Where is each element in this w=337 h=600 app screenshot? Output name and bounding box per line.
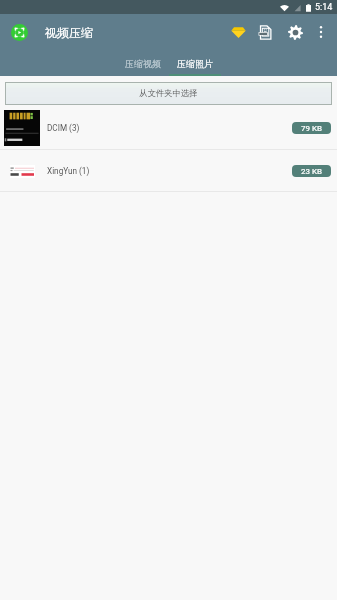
button[interactable]: 从文件夹中选择 [5, 82, 332, 105]
staticText: DCIM (3) [47, 123, 80, 133]
staticText: 从文件夹中选择 [139, 88, 198, 99]
button[interactable]: 压缩视频 [117, 50, 169, 76]
staticText: 压缩视频 [125, 58, 161, 69]
button[interactable]: Settings [282, 19, 308, 45]
staticText: XingYun (1) [47, 166, 90, 176]
staticText: 视频压缩 [45, 25, 93, 40]
button[interactable]: DCIM (3) [0, 106, 337, 150]
staticText: 23 KB [301, 167, 322, 176]
staticText: 79 KB [301, 124, 322, 133]
button[interactable]: Document [252, 19, 278, 45]
staticText: 5:14 [315, 2, 333, 13]
button[interactable]: Premium [225, 19, 251, 45]
button[interactable]: XingYun (1) [0, 150, 337, 192]
button[interactable]: 压缩照片 [169, 50, 221, 76]
staticText: 压缩照片 [177, 58, 213, 69]
button[interactable]: More options [310, 21, 332, 43]
